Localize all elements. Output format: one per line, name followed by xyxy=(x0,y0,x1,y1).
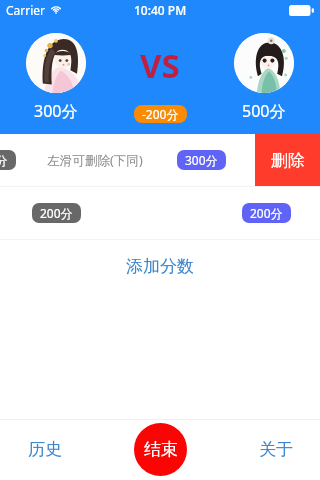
staticText: -200分 xyxy=(142,106,179,122)
staticText: 200分 xyxy=(0,152,8,168)
button[interactable]: 删除 xyxy=(255,134,320,186)
button[interactable]: -200分 xyxy=(134,105,187,123)
staticText: 10:40 PM xyxy=(134,2,187,18)
button[interactable]: Player two avatar xyxy=(234,33,294,93)
staticText: VS xyxy=(140,43,180,88)
staticText: 左滑可删除(下同) xyxy=(47,152,143,169)
staticText: 300分 xyxy=(34,100,78,122)
staticText: 500分 xyxy=(242,100,286,122)
staticText: 关于 xyxy=(259,439,293,460)
button[interactable]: 历史 xyxy=(12,427,78,472)
staticText: 300分 xyxy=(185,152,218,168)
staticText: 历史 xyxy=(28,439,62,460)
staticText: 200分 xyxy=(40,205,73,221)
staticText: 结束 xyxy=(144,439,178,460)
staticText: 删除 xyxy=(271,150,305,171)
staticText: Carrier xyxy=(6,2,46,18)
staticText: 添加分数 xyxy=(126,256,194,277)
button[interactable]: 添加分数 xyxy=(0,240,320,293)
button[interactable]: 结束 xyxy=(134,423,187,476)
button[interactable]: Player one avatar xyxy=(26,33,86,93)
button[interactable]: 关于 xyxy=(243,427,309,472)
button[interactable]: 200分 xyxy=(0,187,320,239)
button[interactable]: 200分 xyxy=(0,134,255,186)
staticText: 200分 xyxy=(250,205,283,221)
